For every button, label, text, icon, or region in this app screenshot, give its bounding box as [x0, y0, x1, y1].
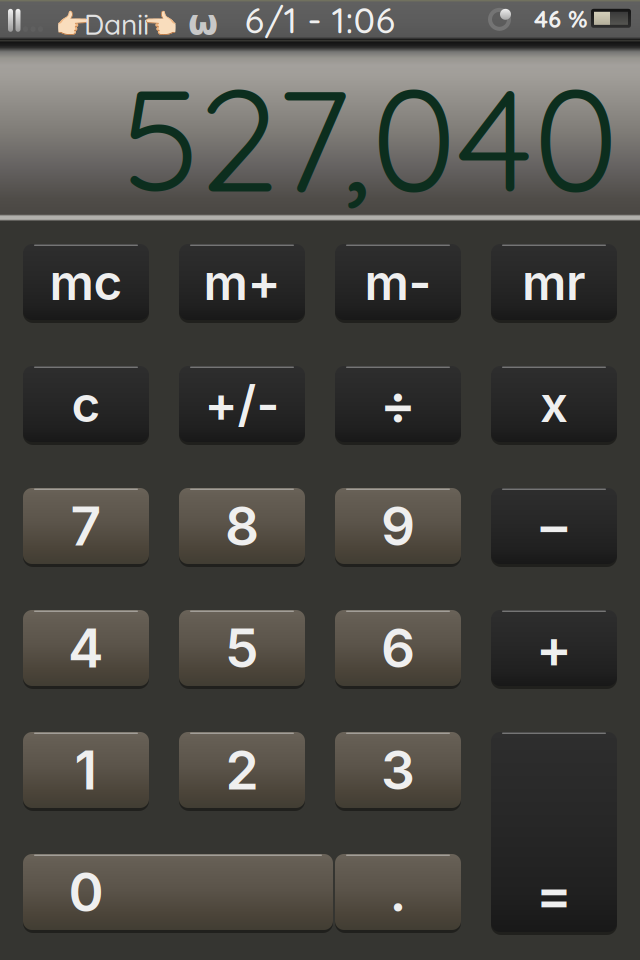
button[interactable]: 7: [23, 488, 149, 564]
button[interactable]: 0: [23, 854, 333, 930]
button[interactable]: 1: [23, 732, 149, 808]
button[interactable]: c: [23, 366, 149, 442]
staticText: +/-: [204, 374, 279, 434]
button[interactable]: 6: [335, 610, 461, 686]
staticText: m+: [203, 252, 280, 312]
staticText: 5: [225, 616, 259, 680]
staticText: 👉🏻: [55, 8, 90, 41]
staticText: mc: [49, 252, 122, 312]
staticText: 2: [225, 738, 258, 802]
staticText: c: [71, 374, 100, 434]
button[interactable]: 4: [23, 610, 149, 686]
button[interactable]: –: [491, 488, 617, 564]
staticText: ω: [188, 3, 218, 43]
staticText: 527,040: [121, 47, 619, 227]
button[interactable]: m+: [179, 244, 305, 320]
staticText: –: [540, 494, 567, 558]
staticText: m-: [364, 252, 431, 312]
staticText: +: [536, 616, 572, 680]
button[interactable]: 3: [335, 732, 461, 808]
staticText: 7: [70, 494, 101, 558]
staticText: ÷: [380, 372, 416, 436]
staticText: Danii: [84, 7, 149, 42]
button[interactable]: +/-: [179, 366, 305, 442]
staticText: mr: [522, 252, 586, 312]
button[interactable]: .: [335, 854, 461, 930]
button[interactable]: =: [491, 732, 617, 932]
button[interactable]: m-: [335, 244, 461, 320]
button[interactable]: 9: [335, 488, 461, 564]
button[interactable]: mc: [23, 244, 149, 320]
staticText: =: [536, 862, 572, 926]
staticText: 6: [381, 616, 415, 680]
staticText: 4: [68, 616, 104, 680]
button[interactable]: 5: [179, 610, 305, 686]
button[interactable]: +: [491, 610, 617, 686]
staticText: .: [389, 860, 406, 924]
staticText: 3: [381, 738, 415, 802]
staticText: 46 %: [534, 4, 588, 34]
staticText: 1: [74, 738, 97, 802]
button[interactable]: ÷: [335, 366, 461, 442]
staticText: 👈🏻: [143, 8, 178, 41]
button[interactable]: 2: [179, 732, 305, 808]
staticText: 0: [68, 860, 103, 924]
staticText: 6/1 - 1:06: [244, 0, 395, 42]
button[interactable]: x: [491, 366, 617, 442]
staticText: 9: [381, 494, 415, 558]
staticText: 8: [225, 494, 259, 558]
button[interactable]: mr: [491, 244, 617, 320]
staticText: x: [540, 374, 568, 434]
button[interactable]: 8: [179, 488, 305, 564]
